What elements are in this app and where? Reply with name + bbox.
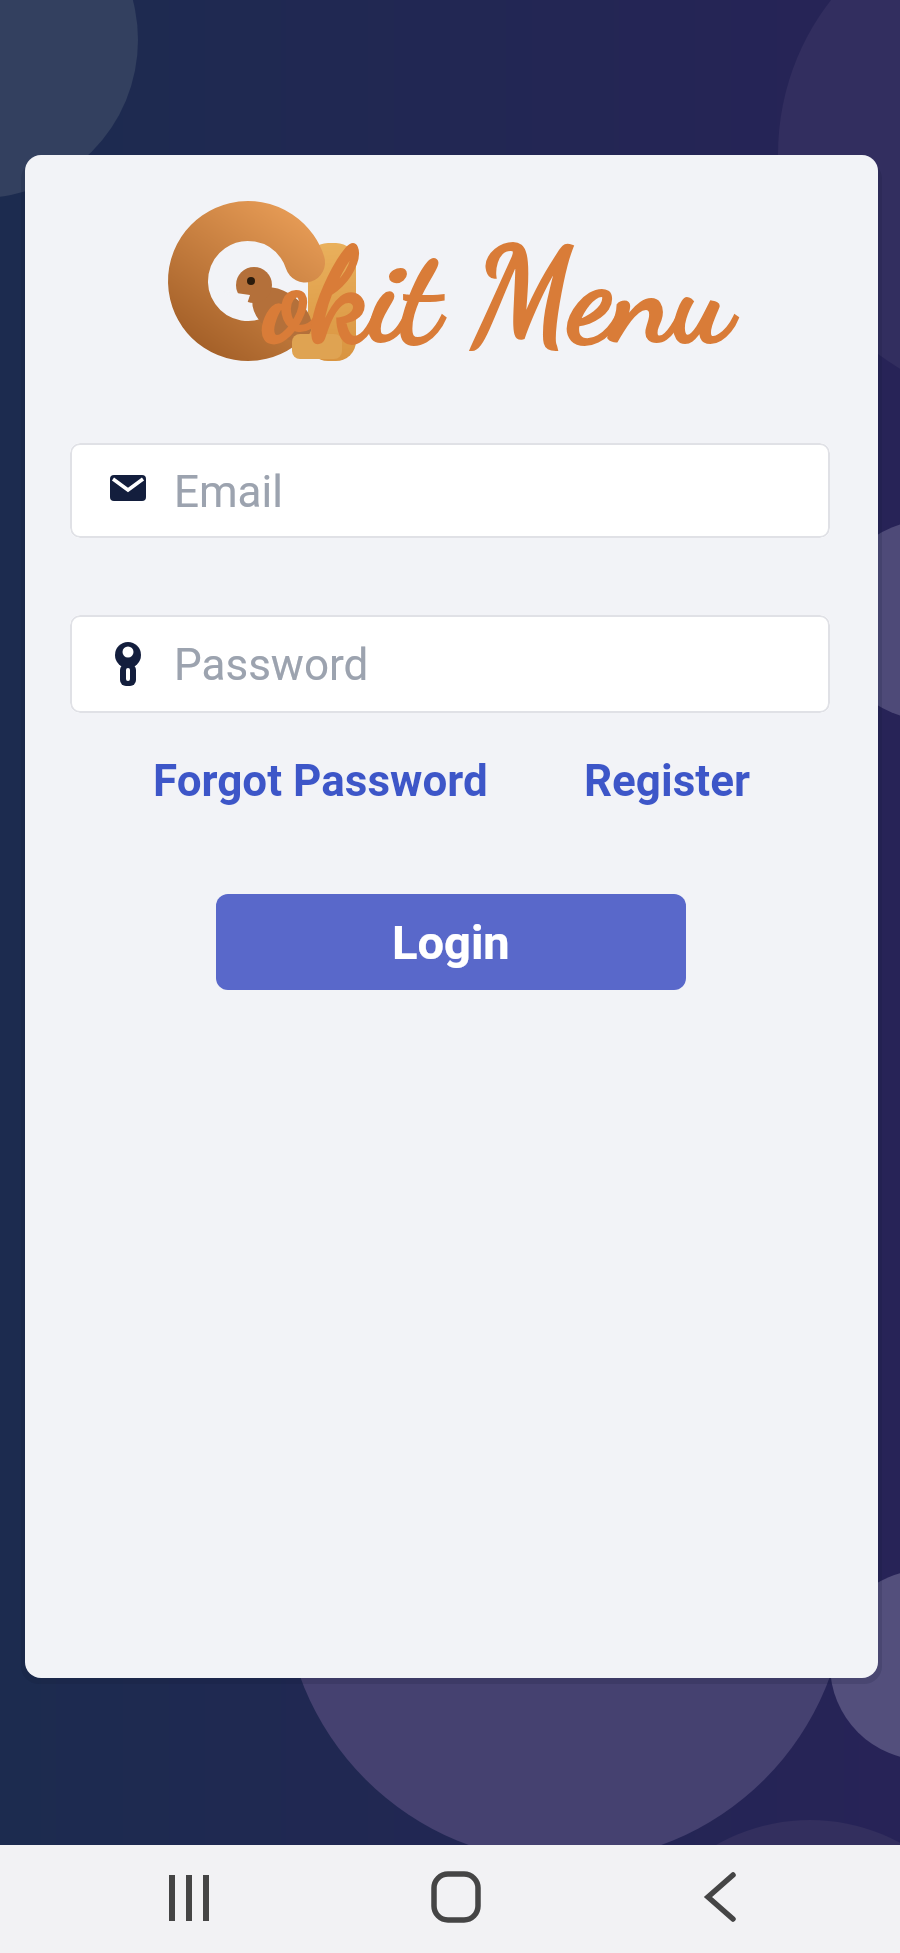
button[interactable]: Register [584,755,751,807]
staticText: Email [174,466,283,518]
button[interactable]: Login [216,894,686,990]
staticText: Login [392,915,510,970]
staticText: okit Menu [265,217,733,374]
button[interactable]: Forgot Password [153,755,488,807]
button[interactable]: Email [70,443,830,538]
button[interactable]: Password [70,615,830,713]
staticText: Password [174,639,369,691]
